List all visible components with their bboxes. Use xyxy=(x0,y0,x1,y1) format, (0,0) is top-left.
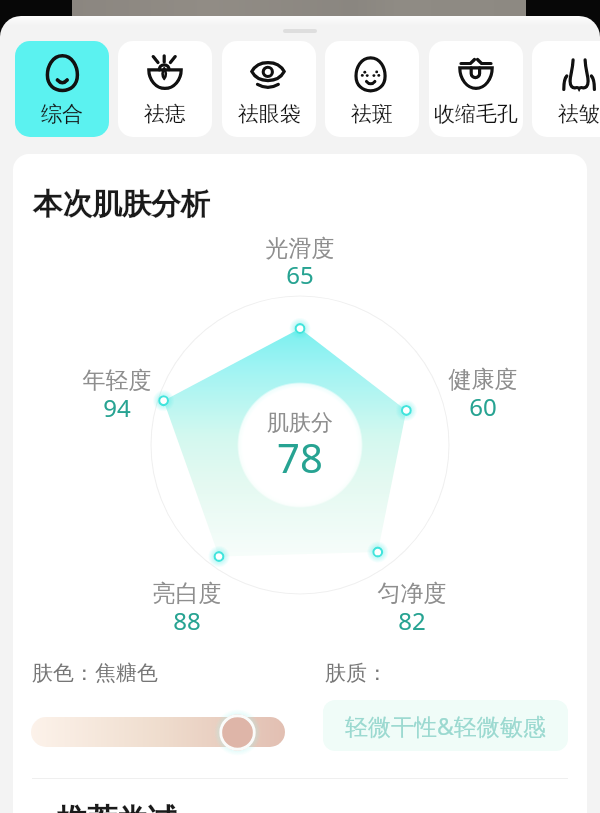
staticText: 轻微干性&轻微敏感 xyxy=(345,710,546,741)
staticText: 推荐尝试 xyxy=(57,801,177,813)
staticText: 94 xyxy=(37,391,197,424)
staticText: 祛皱 xyxy=(558,101,600,127)
staticText: 祛斑 xyxy=(351,101,393,127)
staticText: 祛痣 xyxy=(144,101,186,127)
button[interactable]: 综合 xyxy=(15,41,109,137)
button[interactable]: 祛斑 xyxy=(325,41,419,137)
staticText: 综合 xyxy=(41,101,83,127)
staticText: 祛眼袋 xyxy=(238,101,301,127)
button[interactable]: 祛皱 xyxy=(532,41,600,137)
button[interactable] xyxy=(31,717,285,747)
staticText: 匀净度 xyxy=(332,579,492,608)
staticText: 88 xyxy=(107,604,267,637)
button[interactable]: 轻微干性&轻微敏感 xyxy=(323,700,568,751)
staticText: 收缩毛孔 xyxy=(434,101,518,127)
staticText: 光滑度 xyxy=(220,234,380,263)
staticText: 肤质： xyxy=(325,660,388,686)
staticText: 本次肌肤分析 xyxy=(33,186,210,223)
button[interactable]: 收缩毛孔 xyxy=(429,41,523,137)
staticText: 肤色：焦糖色 xyxy=(32,660,158,686)
staticText: 65 xyxy=(220,258,380,291)
staticText: 健康度 xyxy=(403,365,563,394)
button[interactable]: Skin tone xyxy=(214,709,261,756)
staticText: 82 xyxy=(332,604,492,637)
staticText: 60 xyxy=(403,390,563,423)
staticText: 年轻度 xyxy=(37,366,197,395)
staticText: 78 xyxy=(220,430,380,484)
button[interactable]: 祛眼袋 xyxy=(222,41,316,137)
staticText: 亮白度 xyxy=(107,579,267,608)
staticText: 肌肤分 xyxy=(220,409,380,437)
button[interactable]: 祛痣 xyxy=(118,41,212,137)
